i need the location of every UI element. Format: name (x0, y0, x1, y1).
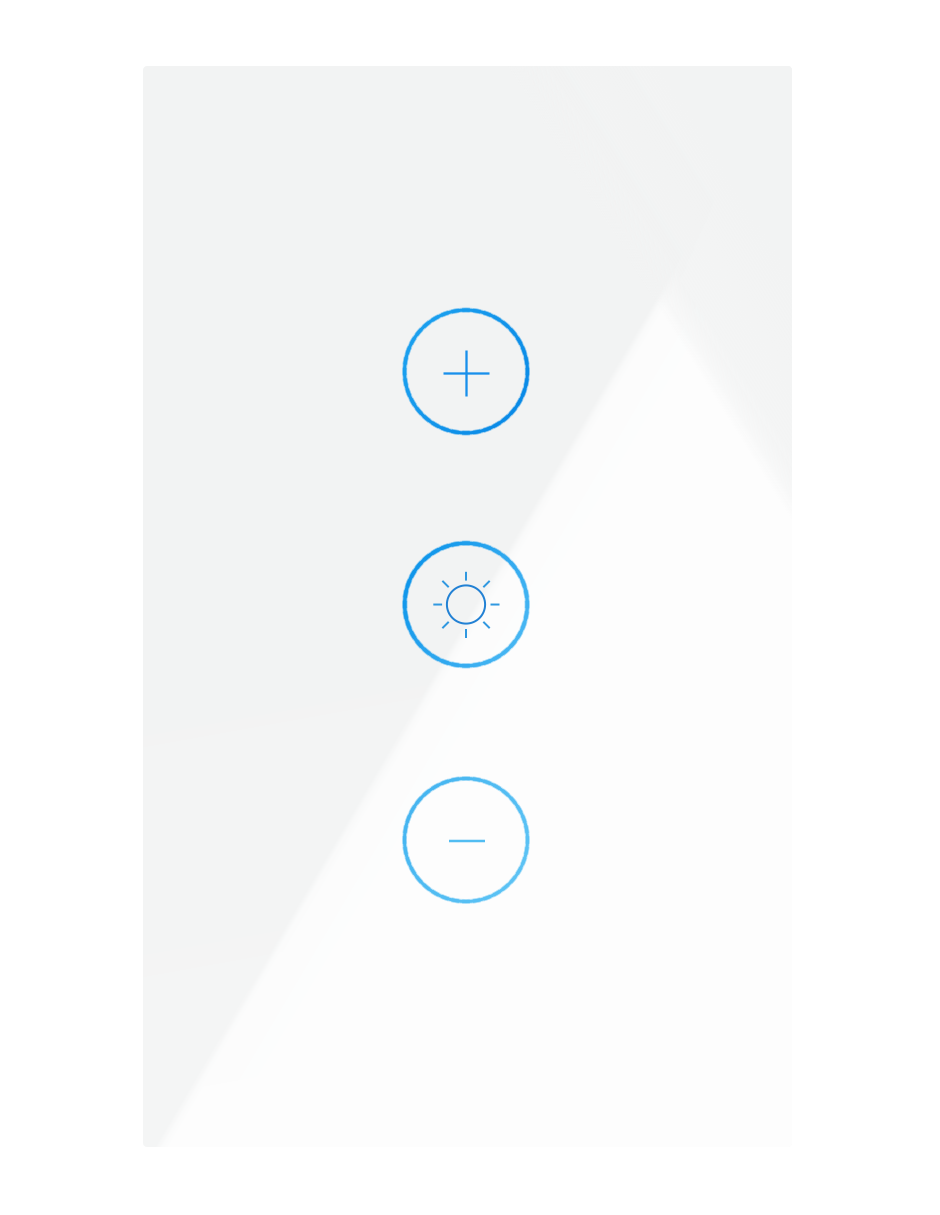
button[interactable]: Dim (403, 777, 529, 903)
button[interactable]: Brighten (403, 308, 529, 434)
button[interactable]: Light on or off (403, 541, 529, 667)
